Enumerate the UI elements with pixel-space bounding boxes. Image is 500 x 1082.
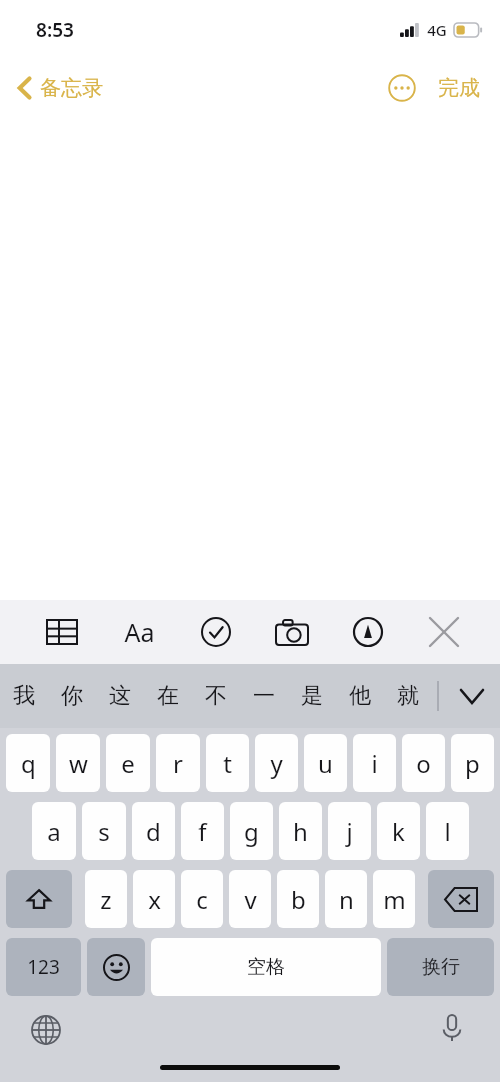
button[interactable]: c [181,870,223,928]
button[interactable]: a [32,802,76,860]
button[interactable]: Camera [266,606,318,658]
staticText: 4G [427,20,447,40]
button[interactable]: 123 [6,938,81,996]
button[interactable]: t [206,734,249,792]
button[interactable]: p [451,734,494,792]
staticText: 备忘录 [40,75,103,101]
button[interactable]: 是 [288,664,336,728]
button[interactable]: z [85,870,127,928]
button[interactable]: g [230,802,273,860]
staticText: n [339,883,354,916]
button[interactable]: d [132,802,175,860]
staticText: k [392,815,405,848]
staticText: s [98,815,110,848]
staticText: 我 [13,682,35,710]
button[interactable]: b [277,870,319,928]
button[interactable]: m [373,870,415,928]
staticText: v [244,883,257,916]
button[interactable]: i [353,734,396,792]
staticText: r [173,747,183,780]
button[interactable]: 在 [144,664,192,728]
staticText: m [383,883,406,916]
button[interactable]: 这 [96,664,144,728]
button[interactable]: e [106,734,150,792]
button[interactable]: 不 [192,664,240,728]
button[interactable]: 就 [384,664,432,728]
button[interactable]: y [255,734,298,792]
button[interactable]: 完成 [434,69,484,107]
staticText: 不 [205,682,227,710]
button[interactable]: 一 [240,664,288,728]
button[interactable]: 你 [48,664,96,728]
button[interactable]: h [279,802,322,860]
button[interactable]: Hide suggestions [444,664,500,728]
button[interactable]: s [82,802,126,860]
staticText: l [444,815,451,848]
staticText: y [270,747,283,780]
button[interactable]: u [304,734,347,792]
staticText: 一 [253,682,275,710]
button[interactable]: o [402,734,445,792]
button[interactable]: More options [384,70,420,106]
staticText: o [416,747,431,780]
staticText: e [121,747,135,780]
staticText: Aa [124,615,155,649]
staticText: d [146,815,161,848]
staticText: j [346,815,353,848]
button[interactable]: Emoji [87,938,145,996]
button[interactable]: Aa [113,606,165,658]
button[interactable]: 我 [0,664,48,728]
button[interactable]: Shift [6,870,72,928]
button[interactable]: n [325,870,367,928]
button[interactable]: l [426,802,469,860]
staticText: 是 [301,682,323,710]
staticText: 他 [349,682,371,710]
staticText: 你 [61,682,83,710]
staticText: i [371,747,378,780]
staticText: b [291,883,306,916]
staticText: a [47,815,61,848]
staticText: z [100,883,112,916]
staticText: g [244,815,259,848]
button[interactable]: v [229,870,271,928]
button[interactable]: Markup [342,606,394,658]
button[interactable]: j [328,802,371,860]
staticText: 123 [27,954,60,980]
staticText: 这 [109,682,131,710]
button[interactable]: 他 [336,664,384,728]
button[interactable]: 备忘录 [12,69,109,107]
staticText: h [293,815,308,848]
staticText: p [465,747,480,780]
button[interactable]: x [133,870,175,928]
staticText: 就 [397,682,419,710]
button[interactable]: r [156,734,200,792]
button[interactable]: 换行 [387,938,494,996]
staticText: 8:53 [36,17,74,43]
staticText: w [69,747,88,780]
staticText: f [198,815,207,848]
button[interactable]: q [6,734,50,792]
staticText: 空格 [247,955,285,979]
staticText: 在 [157,682,179,710]
button[interactable]: Close keyboard [418,606,470,658]
button[interactable]: Change keyboard [22,1006,70,1054]
button[interactable]: Dictation [428,1004,476,1052]
staticText: q [21,747,36,780]
button[interactable]: Table [36,606,88,658]
staticText: u [318,747,333,780]
staticText: c [196,883,208,916]
button[interactable]: f [181,802,224,860]
staticText: 完成 [438,75,480,101]
button[interactable]: Backspace [428,870,494,928]
button[interactable]: w [56,734,100,792]
button[interactable]: 空格 [151,938,381,996]
button[interactable]: k [377,802,420,860]
staticText: x [148,883,161,916]
staticText: t [223,747,232,780]
staticText: 换行 [422,955,460,979]
button[interactable]: Checklist [190,606,242,658]
